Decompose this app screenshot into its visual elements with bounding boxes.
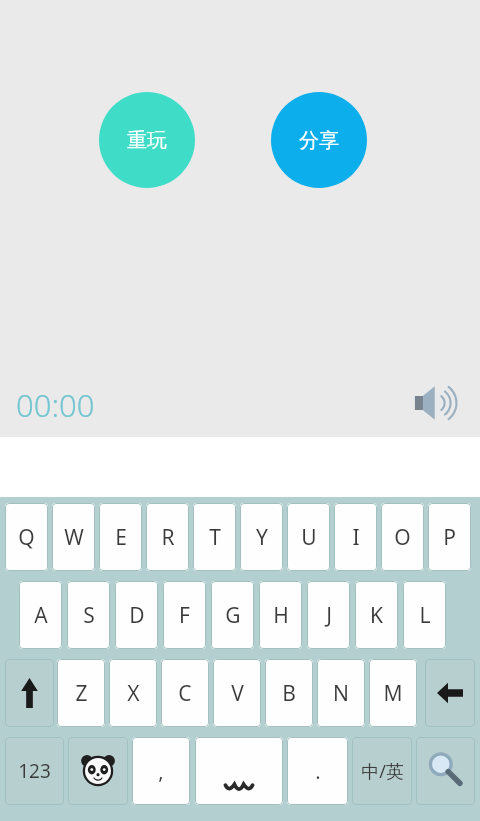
button[interactable]: Search xyxy=(416,737,475,805)
button[interactable]: I xyxy=(334,503,377,571)
staticText: L xyxy=(419,601,431,630)
button[interactable]: F xyxy=(163,581,206,649)
staticText: I xyxy=(352,523,360,552)
staticText: S xyxy=(83,601,95,630)
staticText: R xyxy=(161,523,175,552)
staticText: 重玩 xyxy=(127,128,167,153)
button[interactable]: 00:00 xyxy=(14,382,97,428)
staticText: Q xyxy=(18,523,35,552)
button[interactable]: V xyxy=(213,659,261,727)
staticText: P xyxy=(443,523,456,552)
staticText: V xyxy=(231,679,244,708)
staticText: C xyxy=(178,679,192,708)
button[interactable]: O xyxy=(381,503,424,571)
button[interactable]: Q xyxy=(5,503,48,571)
button[interactable]: Z xyxy=(57,659,105,727)
button[interactable]: G xyxy=(211,581,254,649)
button[interactable]: Emoji xyxy=(68,737,128,805)
button[interactable]: L xyxy=(403,581,446,649)
staticText: E xyxy=(115,523,127,552)
staticText: B xyxy=(282,679,296,708)
button[interactable]: A xyxy=(19,581,62,649)
button[interactable]: C xyxy=(161,659,209,727)
button[interactable]: 中/英 xyxy=(352,737,412,805)
button[interactable]: N xyxy=(317,659,365,727)
staticText: G xyxy=(225,601,241,630)
staticText: Z xyxy=(75,679,88,708)
button[interactable]: D xyxy=(115,581,158,649)
staticText: . xyxy=(315,758,321,785)
button[interactable]: E xyxy=(99,503,142,571)
button[interactable]: U xyxy=(287,503,330,571)
staticText: K xyxy=(370,601,383,630)
staticText: J xyxy=(326,601,332,630)
staticText: N xyxy=(333,679,349,708)
staticText: F xyxy=(179,601,190,630)
button[interactable]: 分享 xyxy=(271,92,367,188)
staticText: Y xyxy=(256,523,268,552)
button[interactable]: Backspace xyxy=(425,659,475,727)
staticText: 分享 xyxy=(299,128,339,153)
button[interactable]: S xyxy=(67,581,110,649)
button[interactable]: J xyxy=(307,581,350,649)
button[interactable]: Y xyxy=(240,503,283,571)
button[interactable]: Shift xyxy=(5,659,54,727)
staticText: T xyxy=(209,523,221,552)
button[interactable]: 重玩 xyxy=(99,92,195,188)
button[interactable]: P xyxy=(428,503,471,571)
staticText: 123 xyxy=(18,758,51,784)
staticText: A xyxy=(34,601,48,630)
button[interactable]: W xyxy=(52,503,95,571)
staticText: D xyxy=(129,601,145,630)
staticText: , xyxy=(158,758,164,785)
button[interactable]: M xyxy=(369,659,417,727)
button[interactable]: Space xyxy=(195,737,283,805)
staticText: X xyxy=(127,679,140,708)
staticText: U xyxy=(301,523,317,552)
button[interactable]: . xyxy=(287,737,348,805)
button[interactable]: R xyxy=(146,503,189,571)
button[interactable]: H xyxy=(259,581,302,649)
staticText: 00:00 xyxy=(16,384,95,426)
button[interactable]: , xyxy=(132,737,190,805)
staticText: W xyxy=(64,523,84,552)
button[interactable]: 123 xyxy=(5,737,64,805)
staticText: 中/英 xyxy=(361,759,404,784)
staticText: H xyxy=(273,601,289,630)
button[interactable]: K xyxy=(355,581,398,649)
button[interactable]: B xyxy=(265,659,313,727)
button[interactable]: X xyxy=(109,659,157,727)
button[interactable]: Sound xyxy=(405,375,467,431)
staticText: O xyxy=(394,523,411,552)
staticText: M xyxy=(383,679,403,708)
button[interactable]: T xyxy=(193,503,236,571)
